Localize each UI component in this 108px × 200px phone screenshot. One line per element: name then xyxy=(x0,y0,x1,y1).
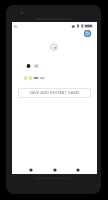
button[interactable]: SAVE AND RESTART GAME xyxy=(18,88,91,98)
button[interactable]: Home xyxy=(50,165,60,175)
staticText: SAVE AND RESTART GAME xyxy=(29,90,80,96)
button[interactable]: Back xyxy=(26,165,36,175)
button[interactable]: Recents xyxy=(73,165,83,175)
button[interactable]: History xyxy=(84,30,91,37)
